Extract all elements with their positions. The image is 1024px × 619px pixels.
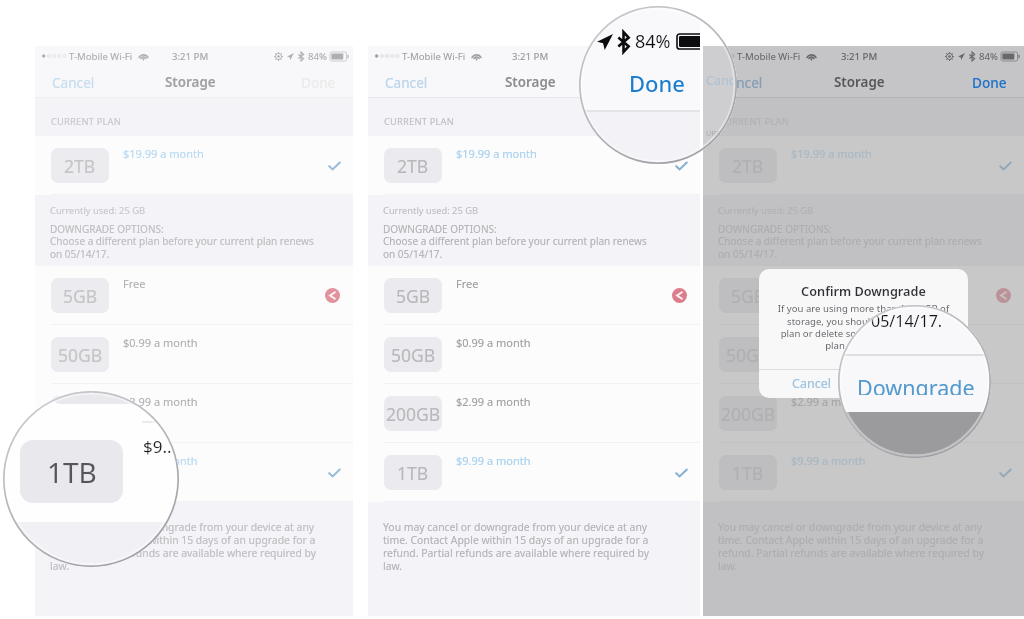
staticText: T-Mobile Wi-Fi — [737, 50, 801, 63]
staticText: Free — [456, 276, 479, 291]
button[interactable]: 2TB — [703, 136, 1024, 195]
staticText: 200GB — [386, 402, 441, 426]
button[interactable]: 200GB — [35, 384, 353, 443]
staticText: $9.99 a month — [123, 453, 198, 468]
button[interactable]: 200GB — [368, 384, 700, 443]
staticText: $0.99 a month — [791, 335, 866, 350]
staticText: $19.99 a month — [456, 146, 537, 161]
staticText: 05/14/17. — [871, 310, 943, 330]
staticText: $9.99 a month — [456, 453, 531, 468]
staticText: 200GB — [721, 402, 776, 426]
button[interactable]: 50GB — [703, 325, 1024, 384]
staticText: Storage — [505, 73, 556, 91]
staticText: $19.99 a month — [123, 146, 204, 161]
button[interactable]: Cancel — [368, 68, 440, 97]
button[interactable]: 5GB — [703, 266, 1024, 325]
button[interactable]: Downgrade — [864, 369, 968, 398]
staticText: $2.99 a month — [456, 394, 531, 409]
staticText: Downgrade — [882, 375, 951, 392]
staticText: You may cancel or downgrade from your de… — [383, 520, 649, 573]
button[interactable]: 50GB — [368, 325, 700, 384]
staticText: Canc — [706, 72, 735, 89]
staticText: 1TB — [64, 461, 96, 485]
staticText: Cancel — [52, 73, 95, 92]
staticText: 3:21 PM — [841, 50, 878, 63]
staticText: 1TB — [732, 461, 764, 485]
staticText: URR — [706, 128, 721, 138]
staticText: 1TB — [47, 453, 97, 491]
staticText: 3:21 PM — [172, 50, 209, 63]
staticText: $2.99 a month — [791, 394, 866, 409]
button[interactable]: Cancel — [35, 68, 107, 97]
staticText: 84% — [979, 50, 998, 63]
staticText: Cancel — [385, 73, 428, 92]
button[interactable]: 50GB — [35, 325, 353, 384]
staticText: $0.99 a month — [123, 335, 198, 350]
staticText: Done — [648, 73, 683, 92]
button[interactable]: 5GB — [368, 266, 700, 325]
staticText: CURRENT PLAN — [384, 115, 454, 128]
staticText: 50GB — [726, 343, 771, 367]
staticText: CURRENT PLAN — [719, 115, 789, 128]
staticText: 5GB — [63, 284, 98, 308]
staticText: 2TB — [397, 154, 429, 178]
button[interactable]: Done — [636, 68, 700, 97]
staticText: 5GB — [396, 284, 431, 308]
button[interactable]: 1TB — [35, 443, 353, 502]
staticText: $2.99 a month — [123, 394, 198, 409]
staticText: Done — [301, 73, 336, 92]
staticText: 1TB — [397, 461, 429, 485]
staticText: 2TB — [64, 154, 96, 178]
staticText: 200GB — [53, 402, 108, 426]
button[interactable]: 5GB — [35, 266, 353, 325]
button[interactable]: 2TB — [368, 136, 700, 195]
staticText: CURRENT PLAN — [51, 115, 121, 128]
staticText: DOWNGRADE OPTIONS: Choose a different pl… — [50, 222, 314, 261]
staticText: 50GB — [391, 343, 436, 367]
staticText: T- — [729, 50, 736, 61]
staticText: Downgrade — [857, 373, 975, 395]
staticText: If you are using more than 1000 GB of st… — [767, 302, 960, 352]
staticText: 84% — [635, 29, 671, 54]
staticText: Currently used: 25 GB — [718, 204, 813, 217]
button[interactable]: Cancel — [703, 68, 775, 97]
staticText: DOWNGRADE OPTIONS: Choose a different pl… — [383, 222, 647, 261]
staticText: $9.. — [143, 435, 172, 455]
button[interactable]: 2TB — [35, 136, 353, 195]
staticText: Cancel — [792, 375, 831, 392]
staticText: 3:21 PM — [512, 50, 549, 63]
button[interactable]: Done — [960, 68, 1024, 97]
staticText: 2TB — [732, 154, 764, 178]
staticText: Currently used: 25 GB — [50, 204, 145, 217]
button[interactable]: 200GB — [703, 384, 1024, 443]
staticText: Storage — [165, 73, 216, 91]
staticText: 84% — [308, 50, 327, 63]
button[interactable]: Cancel — [759, 369, 863, 398]
staticText: You may cancel or downgrade from your de… — [50, 520, 316, 573]
staticText: Done — [629, 68, 685, 94]
staticText: Free — [123, 276, 146, 291]
staticText: T-Mobile Wi-Fi — [69, 50, 133, 63]
staticText: $9.99 a month — [791, 453, 866, 468]
staticText: Currently used: 25 GB — [383, 204, 478, 217]
staticText: Confirm Downgrade — [759, 282, 968, 299]
staticText: DOWNGRADE OPTIONS: Choose a different pl… — [718, 222, 982, 261]
staticText: You may cancel or downgrade from your de… — [718, 520, 984, 573]
staticText: Storage — [834, 73, 885, 91]
button[interactable]: Done — [289, 68, 353, 97]
staticText: T-Mobile Wi-Fi — [402, 50, 466, 63]
staticText: Free — [791, 276, 814, 291]
staticText: $19.99 a month — [791, 146, 872, 161]
button[interactable]: 1TB — [368, 443, 700, 502]
staticText: Cancel — [720, 73, 763, 92]
staticText: $0.99 a month — [456, 335, 531, 350]
staticText: 50GB — [58, 343, 103, 367]
staticText: Done — [972, 73, 1007, 92]
staticText: 5GB — [731, 284, 766, 308]
button[interactable]: 1TB — [703, 443, 1024, 502]
